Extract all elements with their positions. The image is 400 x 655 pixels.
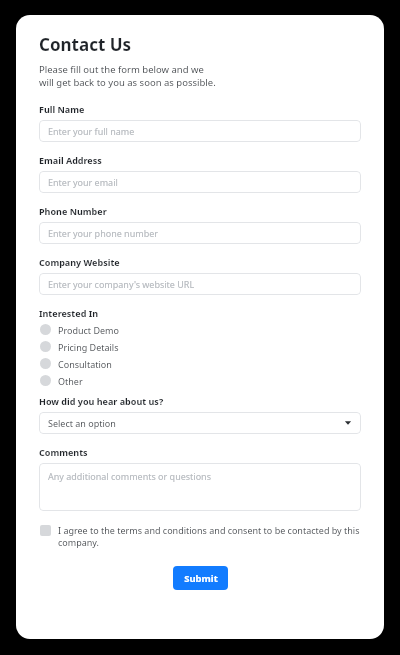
staticText: Company Website bbox=[39, 256, 120, 268]
staticText: Other bbox=[58, 375, 83, 387]
button[interactable]: I agree to the terms and conditions and … bbox=[39, 524, 361, 549]
staticText: Please fill out the form below and we wi… bbox=[39, 63, 216, 89]
button[interactable]: Consultation bbox=[39, 355, 361, 372]
staticText: Pricing Details bbox=[58, 341, 119, 353]
button[interactable]: Enter your full name bbox=[39, 120, 361, 142]
staticText: How did you hear about us? bbox=[39, 395, 164, 407]
button[interactable]: Other bbox=[39, 372, 361, 389]
staticText: Enter your phone number bbox=[48, 227, 158, 239]
button[interactable]: Enter your company's website URL bbox=[39, 273, 361, 295]
staticText: Comments bbox=[39, 446, 88, 458]
staticText: Select an option bbox=[48, 417, 116, 429]
staticText: Interested In bbox=[39, 307, 99, 319]
staticText: Any additional comments or questions bbox=[48, 470, 211, 482]
button[interactable]: Any additional comments or questions bbox=[39, 463, 361, 511]
staticText: Full Name bbox=[39, 103, 85, 115]
button[interactable]: Pricing Details bbox=[39, 338, 361, 355]
staticText: Email Address bbox=[39, 154, 102, 166]
staticText: Phone Number bbox=[39, 205, 107, 217]
button[interactable]: Submit bbox=[173, 566, 228, 590]
staticText: Contact Us bbox=[39, 33, 132, 56]
button[interactable]: Product Demo bbox=[39, 321, 361, 338]
staticText: I agree to the terms and conditions and … bbox=[58, 524, 361, 549]
staticText: Enter your full name bbox=[48, 125, 135, 137]
staticText: Enter your email bbox=[48, 176, 118, 188]
staticText: Consultation bbox=[58, 358, 112, 370]
staticText: Submit bbox=[184, 572, 218, 585]
button[interactable]: Enter your phone number bbox=[39, 222, 361, 244]
button[interactable]: Enter your email bbox=[39, 171, 361, 193]
button[interactable]: Select an option bbox=[39, 412, 361, 434]
staticText: Enter your company's website URL bbox=[48, 278, 195, 290]
staticText: Product Demo bbox=[58, 324, 119, 336]
